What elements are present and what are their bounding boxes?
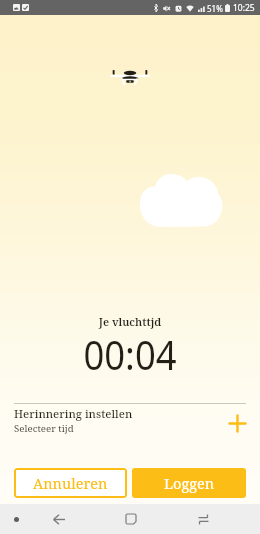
button[interactable]: Herinnering instellen	[0, 404, 260, 436]
button[interactable]: Tijd toevoegen	[224, 410, 250, 436]
staticText: Je vluchttjd	[0, 314, 260, 329]
staticText: 10:25	[233, 2, 255, 14]
staticText: Loggen	[164, 473, 215, 493]
button[interactable]: Annuleren	[14, 468, 127, 498]
staticText: 51%	[207, 3, 223, 14]
button[interactable]: Menu	[4, 507, 28, 531]
button[interactable]: Recent apps	[191, 507, 215, 531]
button[interactable]: Back	[46, 507, 71, 532]
button[interactable]: Home	[119, 507, 143, 531]
staticText: Selecteer tijd	[14, 422, 74, 435]
staticText: 00:04	[12, 327, 248, 381]
staticText: Herinnering instellen	[14, 406, 133, 421]
button[interactable]: Loggen	[132, 468, 246, 498]
staticText: Annuleren	[33, 473, 108, 493]
